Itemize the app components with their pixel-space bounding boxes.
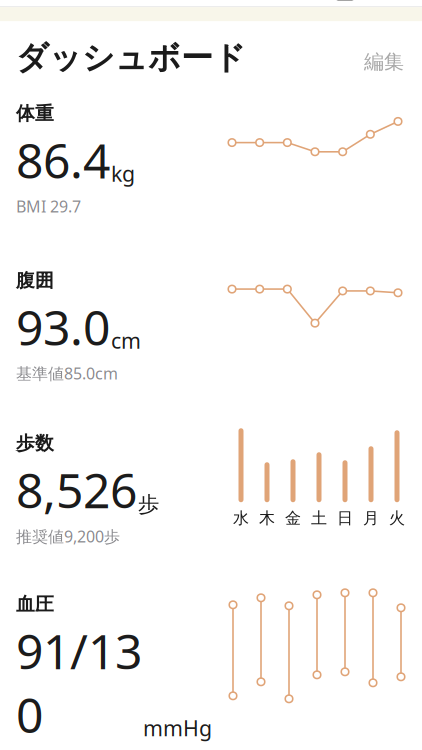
staticText: 土 [311, 508, 327, 528]
button[interactable]: 体重 [0, 102, 422, 217]
button[interactable]: 歩数 [0, 432, 422, 547]
staticText: 月 [363, 508, 379, 528]
staticText: 91/130 [16, 619, 142, 746]
staticText: kg [111, 159, 135, 188]
staticText: 93.0 [16, 295, 110, 359]
button[interactable]: 編集 [362, 45, 406, 78]
staticText: 木 [259, 508, 275, 528]
staticText: mmHg [143, 714, 212, 742]
staticText: ダッシュボード [16, 38, 246, 77]
staticText: 水 [233, 508, 249, 528]
staticText: 8,526 [16, 458, 137, 521]
staticText: 編集 [364, 49, 404, 74]
staticText: BMI 29.7 [16, 196, 81, 217]
button[interactable]: 血圧 [0, 593, 422, 750]
staticText: 歩数 [16, 432, 54, 455]
staticText: 体重 [16, 102, 54, 125]
staticText: 火 [389, 508, 405, 528]
staticText: 腹囲 [16, 269, 54, 292]
staticText: 86.4 [16, 128, 110, 192]
button[interactable]: 腹囲 [0, 269, 422, 384]
staticText: 推奨値9,200歩 [16, 526, 120, 547]
staticText: 歩 [138, 491, 159, 518]
staticText: cm [111, 326, 141, 355]
staticText: 血圧 [16, 593, 54, 616]
staticText: 日 [337, 508, 353, 528]
button[interactable]: 記録 [324, 0, 366, 5]
staticText: 金 [285, 508, 301, 528]
staticText: 基準値85.0cm [16, 363, 118, 384]
